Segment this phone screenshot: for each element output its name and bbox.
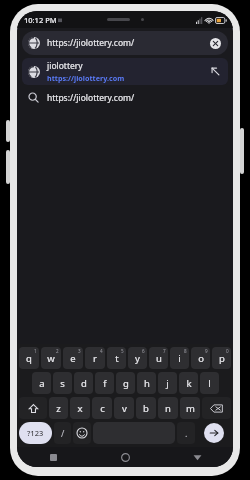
button[interactable]: https://jiolottery.com/ bbox=[22, 31, 228, 55]
staticText: f bbox=[103, 377, 107, 390]
button[interactable]: Shift bbox=[19, 397, 47, 419]
button[interactable]: i bbox=[170, 347, 189, 369]
staticText: w bbox=[47, 352, 55, 365]
staticText: b bbox=[143, 402, 149, 415]
staticText: jiolottery bbox=[47, 60, 83, 72]
staticText: v bbox=[122, 402, 127, 415]
button[interactable]: u bbox=[149, 347, 168, 369]
staticText: https://jiolottery.com/ bbox=[47, 37, 135, 49]
button[interactable]: Recent apps bbox=[17, 447, 89, 467]
button[interactable]: o bbox=[191, 347, 210, 369]
button[interactable]: m bbox=[180, 397, 200, 419]
button[interactable]: ?123 bbox=[19, 422, 52, 444]
button[interactable]: x bbox=[70, 397, 90, 419]
staticText: r bbox=[93, 352, 97, 365]
button[interactable]: w bbox=[41, 347, 61, 369]
button[interactable]: v bbox=[114, 397, 134, 419]
button[interactable]: g bbox=[116, 372, 135, 394]
staticText: n bbox=[165, 402, 171, 415]
button[interactable]: a bbox=[32, 372, 51, 394]
staticText: 6 bbox=[142, 348, 145, 354]
staticText: 1 bbox=[34, 348, 37, 354]
button[interactable]: p bbox=[212, 347, 231, 369]
staticText: q bbox=[26, 352, 32, 365]
button[interactable]: Emoji bbox=[73, 422, 91, 444]
staticText: x bbox=[77, 402, 83, 415]
staticText: 0 bbox=[226, 348, 229, 354]
staticText: 3 bbox=[78, 348, 81, 354]
button[interactable]: f bbox=[95, 372, 114, 394]
staticText: e bbox=[70, 352, 76, 365]
button[interactable]: n bbox=[158, 397, 178, 419]
button[interactable]: y bbox=[128, 347, 147, 369]
button[interactable]: Edit suggestion bbox=[209, 65, 222, 78]
staticText: u bbox=[156, 352, 162, 365]
staticText: t bbox=[115, 352, 119, 365]
staticText: https://jiolottery.com bbox=[47, 73, 125, 83]
staticText: / bbox=[61, 427, 65, 439]
button[interactable]: s bbox=[53, 372, 72, 394]
button[interactable]: t bbox=[107, 347, 126, 369]
staticText: s bbox=[60, 377, 65, 390]
button[interactable]: Enter bbox=[204, 423, 224, 443]
staticText: p bbox=[219, 352, 225, 365]
staticText: 7 bbox=[163, 348, 166, 354]
button[interactable]: jiolottery bbox=[22, 58, 228, 85]
staticText: l bbox=[208, 377, 211, 390]
button[interactable]: . bbox=[177, 422, 195, 444]
button[interactable]: Backspace bbox=[202, 397, 231, 419]
staticText: o bbox=[198, 352, 204, 365]
button[interactable]: j bbox=[158, 372, 177, 394]
button[interactable]: h bbox=[137, 372, 156, 394]
staticText: c bbox=[100, 402, 105, 415]
button[interactable]: Home bbox=[89, 447, 161, 467]
staticText: . bbox=[185, 427, 188, 439]
button[interactable]: c bbox=[92, 397, 112, 419]
staticText: 10:12 PM bbox=[24, 15, 57, 25]
staticText: h bbox=[144, 377, 150, 390]
button[interactable]: q bbox=[19, 347, 39, 369]
staticText: 8 bbox=[184, 348, 187, 354]
button[interactable]: e bbox=[63, 347, 83, 369]
staticText: ?123 bbox=[27, 428, 44, 438]
staticText: k bbox=[186, 377, 192, 390]
staticText: i bbox=[178, 352, 181, 365]
button[interactable]: b bbox=[136, 397, 156, 419]
staticText: m bbox=[186, 402, 195, 415]
staticText: z bbox=[56, 402, 61, 415]
staticText: 9 bbox=[205, 348, 208, 354]
button[interactable]: d bbox=[74, 372, 93, 394]
staticText: 2 bbox=[56, 348, 59, 354]
staticText: g bbox=[123, 377, 129, 390]
button[interactable]: r bbox=[85, 347, 105, 369]
staticText: a bbox=[39, 377, 45, 390]
staticText: 5 bbox=[121, 348, 124, 354]
button[interactable]: Hide keyboard bbox=[161, 447, 233, 467]
button[interactable]: https://jiolottery.com/ bbox=[22, 85, 228, 110]
button[interactable]: k bbox=[179, 372, 198, 394]
staticText: j bbox=[166, 377, 169, 390]
button[interactable]: / bbox=[54, 422, 71, 444]
staticText: y bbox=[135, 352, 140, 365]
button[interactable]: Clear text bbox=[208, 36, 222, 50]
staticText: https://jiolottery.com/ bbox=[47, 92, 135, 104]
button[interactable]: z bbox=[49, 397, 68, 419]
staticText: 4 bbox=[100, 348, 103, 354]
staticText: d bbox=[81, 377, 87, 390]
button[interactable]: l bbox=[200, 372, 219, 394]
